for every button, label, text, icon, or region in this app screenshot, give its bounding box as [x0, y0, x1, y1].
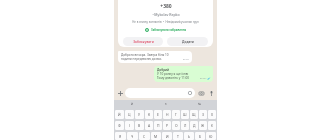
- button[interactable]: Додати: [167, 37, 208, 46]
- staticText: Ж: [201, 123, 205, 128]
- button[interactable]: З: [199, 110, 207, 119]
- staticText: й: [131, 102, 133, 106]
- staticText: Г: [175, 112, 177, 117]
- staticText: Е: [157, 112, 159, 117]
- staticText: У: [138, 112, 141, 117]
- button[interactable]: Ч: [127, 132, 138, 140]
- button[interactable]: О: [172, 121, 180, 130]
- staticText: Ц: [128, 112, 131, 117]
- button[interactable]: И: [162, 132, 172, 140]
- staticText: ~Mykolav Repko: [152, 12, 180, 17]
- staticText: Д: [193, 123, 196, 128]
- staticText: Ф: [118, 123, 121, 128]
- staticText: Я: [119, 134, 122, 139]
- button[interactable]: з: [149, 100, 183, 108]
- button[interactable]: С: [139, 132, 150, 140]
- other: Sticker: [188, 91, 192, 95]
- staticText: Ю: [209, 134, 213, 139]
- staticText: М: [154, 134, 158, 139]
- staticText: І: [129, 123, 130, 128]
- staticText: Добрий: [157, 68, 170, 72]
- staticText: Тому дзвоніть у 11:00: [157, 76, 190, 80]
- button[interactable]: №: [183, 100, 217, 108]
- staticText: Ш: [183, 112, 187, 117]
- button[interactable]: Є: [208, 121, 216, 130]
- staticText: З: [202, 112, 204, 117]
- staticText: Б: [199, 134, 202, 139]
- staticText: Н: [166, 112, 169, 117]
- staticText: С: [143, 134, 146, 139]
- staticText: 21:15: [200, 77, 206, 80]
- button[interactable]: Voice message: [207, 89, 215, 97]
- staticText: Не в списку контактів • Невідомий учасни…: [132, 20, 199, 24]
- button[interactable]: У: [135, 110, 144, 119]
- button[interactable]: Sticker: [125, 88, 195, 98]
- staticText: Щ: [192, 112, 196, 117]
- button[interactable]: Б: [195, 132, 205, 140]
- button[interactable]: П: [154, 121, 162, 130]
- staticText: 21:13: [183, 58, 189, 61]
- button[interactable]: Н: [163, 110, 171, 119]
- button[interactable]: Р: [163, 121, 171, 130]
- staticText: Заблокувати зображення: [151, 28, 187, 32]
- staticText: А: [148, 123, 151, 128]
- button[interactable]: Заблокувати: [123, 37, 163, 46]
- staticText: У 10 ранку я ще їхню: [157, 72, 189, 76]
- staticText: Є: [211, 123, 214, 128]
- staticText: В: [138, 123, 141, 128]
- staticText: Л: [184, 123, 187, 128]
- button[interactable]: Доброго вечора. Завтра біля 10: [118, 51, 192, 63]
- button[interactable]: Й: [115, 110, 124, 119]
- button[interactable]: К: [145, 110, 153, 119]
- staticText: Ч: [131, 134, 134, 139]
- button[interactable]: І: [125, 121, 134, 130]
- button[interactable]: Я: [115, 132, 126, 140]
- staticText: Ь: [188, 134, 191, 139]
- button[interactable]: Ь: [184, 132, 194, 140]
- staticText: П: [157, 123, 160, 128]
- staticText: +380: [160, 3, 172, 10]
- staticText: О: [175, 123, 178, 128]
- staticText: з: [165, 102, 167, 106]
- button[interactable]: Г: [172, 110, 180, 119]
- staticText: Й: [118, 112, 121, 117]
- button[interactable]: Щ: [190, 110, 198, 119]
- button[interactable]: Ф: [115, 121, 124, 130]
- staticText: И: [166, 134, 169, 139]
- staticText: Доброго вечора. Завтра біля 10: [121, 53, 169, 57]
- button[interactable]: Л: [181, 121, 189, 130]
- button[interactable]: Ц: [125, 110, 134, 119]
- button[interactable]: Ж: [199, 121, 207, 130]
- button[interactable]: Х: [208, 110, 216, 119]
- staticText: Додати: [182, 40, 194, 44]
- button[interactable]: В: [135, 121, 144, 130]
- button[interactable]: М: [151, 132, 161, 140]
- button[interactable]: Camera: [197, 89, 205, 97]
- button[interactable]: Д: [190, 121, 198, 130]
- button[interactable]: Attach: [116, 89, 125, 98]
- button[interactable]: Т: [173, 132, 183, 140]
- staticText: Т: [177, 134, 179, 139]
- button[interactable]: Заблокувати зображення: [143, 27, 189, 33]
- button[interactable]: Ш: [181, 110, 189, 119]
- button[interactable]: Ю: [206, 132, 216, 140]
- button[interactable]: й: [114, 100, 149, 108]
- staticText: Р: [166, 123, 169, 128]
- staticText: К: [148, 112, 151, 117]
- button[interactable]: Добрий: [154, 66, 213, 82]
- staticText: Х: [211, 112, 213, 117]
- staticText: №: [198, 102, 202, 106]
- button[interactable]: А: [145, 121, 153, 130]
- staticText: години передзвоню до вас.: [121, 57, 163, 61]
- staticText: Заблокувати: [133, 40, 154, 44]
- button[interactable]: Е: [154, 110, 162, 119]
